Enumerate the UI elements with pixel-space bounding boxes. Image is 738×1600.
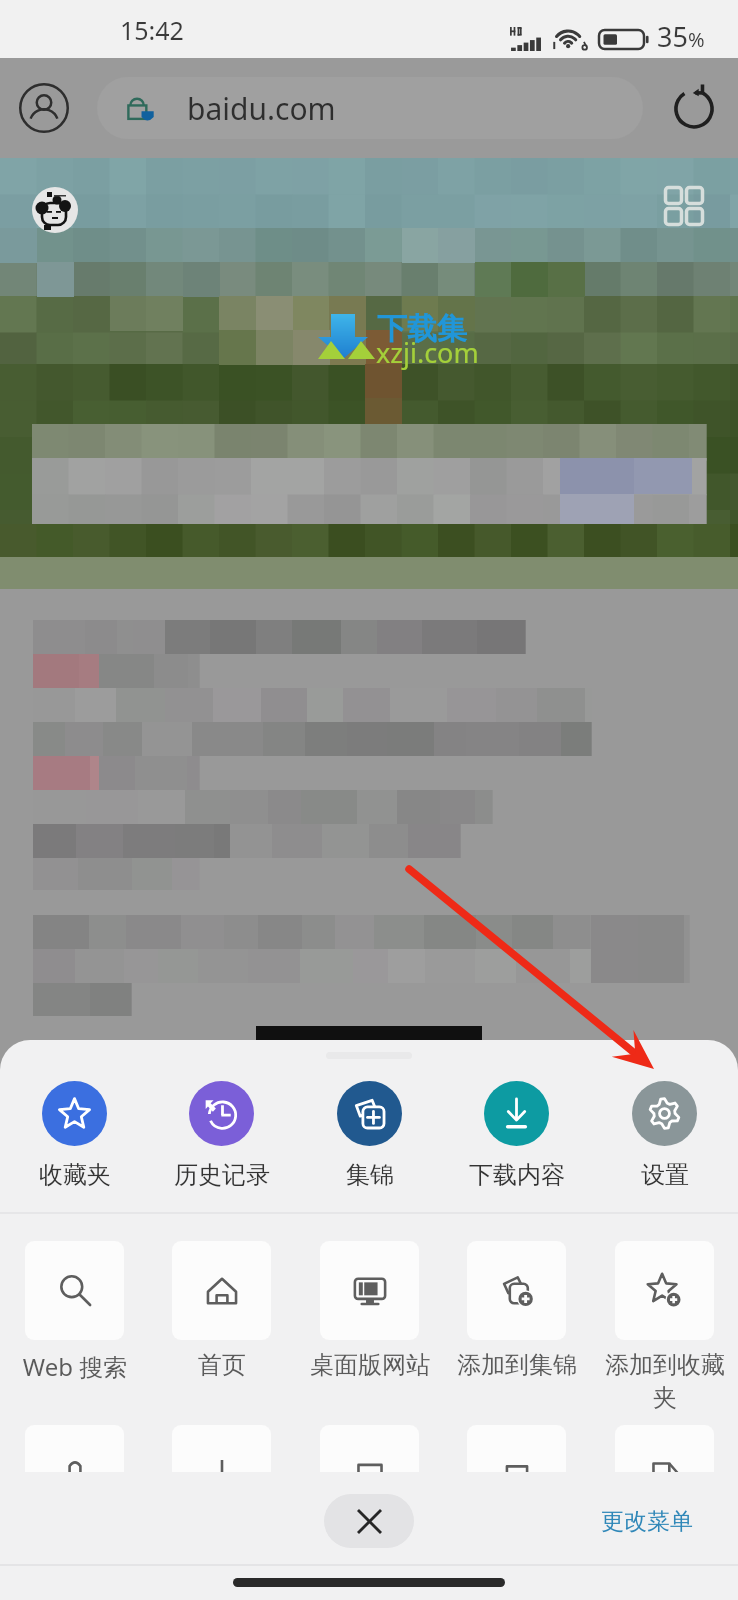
staticText: 设置 [641, 1160, 689, 1190]
staticText: 收藏夹 [39, 1160, 111, 1190]
staticText: 添加到收藏夹 [602, 1350, 728, 1413]
staticText: 下载内容 [469, 1160, 565, 1190]
button[interactable]: Close [324, 1494, 414, 1548]
staticText: 更改菜单 [601, 1507, 693, 1536]
staticText: 首页 [159, 1350, 285, 1380]
staticText: 35 [657, 18, 688, 55]
button[interactable] [591, 1425, 738, 1567]
staticText: 添加到集锦 [454, 1350, 580, 1380]
staticText: Web 搜索 [12, 1350, 138, 1383]
staticText: 下载集 [377, 310, 467, 348]
staticText [307, 1534, 433, 1567]
button[interactable]: 添加到收藏夹 [591, 1241, 738, 1413]
button[interactable] [1, 1425, 148, 1567]
button[interactable]: Web 搜索 [1, 1241, 148, 1383]
button[interactable] [296, 1425, 443, 1567]
staticText: 桌面版网站 [307, 1350, 433, 1380]
button[interactable]: 历史记录 [148, 1081, 295, 1190]
staticText [602, 1534, 728, 1567]
staticText: 集锦 [346, 1160, 394, 1190]
button[interactable]: 下载内容 [443, 1081, 590, 1190]
staticText: baidu.com [187, 88, 336, 129]
button[interactable]: 收藏夹 [1, 1081, 148, 1190]
button[interactable] [148, 1425, 295, 1567]
button[interactable]: 桌面版网站 [296, 1241, 443, 1380]
button[interactable]: Account [12, 76, 76, 140]
button[interactable]: 首页 [148, 1241, 295, 1380]
staticText: 历史记录 [174, 1160, 270, 1190]
staticText: xzji.com [376, 334, 479, 371]
staticText [12, 1534, 138, 1567]
button[interactable]: 集锦 [296, 1081, 443, 1190]
staticText [159, 1534, 285, 1567]
button[interactable]: Refresh [664, 78, 724, 138]
staticText: % [688, 26, 705, 53]
button[interactable]: 添加到集锦 [443, 1241, 590, 1380]
button[interactable]: 设置 [591, 1081, 738, 1190]
button[interactable]: baidu.com [97, 77, 643, 139]
staticText [454, 1534, 580, 1567]
button[interactable] [443, 1425, 590, 1567]
staticText: 15:42 [120, 13, 184, 47]
button[interactable]: 更改菜单 [601, 1507, 693, 1536]
